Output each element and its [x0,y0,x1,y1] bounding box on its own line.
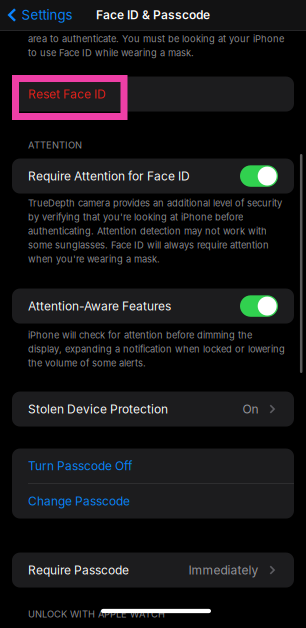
button[interactable]: Turn Passcode Off [12,449,294,483]
staticText: iPhone will check for attention before d… [28,329,252,340]
staticText: to use Face ID while wearing a mask. [28,47,194,58]
staticText: Reset Face ID [28,87,106,101]
staticText: ATTENTION [28,139,82,150]
staticText: the volume of some alerts. [28,357,146,368]
staticText: On [242,402,258,416]
button[interactable]: Reset Face ID [0,76,306,111]
staticText: Require Passcode [28,563,129,577]
staticText: by verifying that you're looking at iPho… [28,211,243,222]
staticText: Attention-Aware Features [28,299,171,313]
button[interactable]: Back to Settings [0,7,72,23]
button[interactable]: Stolen Device Protection [0,392,306,427]
staticText: UNLOCK WITH APPLE WATCH [28,608,165,619]
button[interactable]: Change Passcode [12,484,294,519]
button[interactable]: Require Attention for Face ID [240,165,278,187]
button[interactable]: Attention-Aware Features [240,295,278,317]
staticText: area to authenticate. You must be lookin… [28,33,284,44]
staticText: Require Attention for Face ID [28,169,190,183]
staticText: some sunglasses. Face ID will always req… [28,239,269,250]
staticText: Face ID & Passcode [96,8,210,22]
staticText: Stolen Device Protection [28,402,168,416]
staticText: TrueDepth camera provides an additional … [28,197,282,208]
staticText: Settings [21,7,72,23]
staticText: Change Passcode [28,494,130,508]
staticText: Turn Passcode Off [28,459,132,473]
staticText: Immediately [188,563,258,577]
staticText: authenticating. Attention detection may … [28,225,267,236]
staticText: when you're wearing a mask. [28,253,160,264]
staticText: display, expanding a notification when l… [28,343,285,354]
button[interactable]: Require Passcode [0,552,306,587]
